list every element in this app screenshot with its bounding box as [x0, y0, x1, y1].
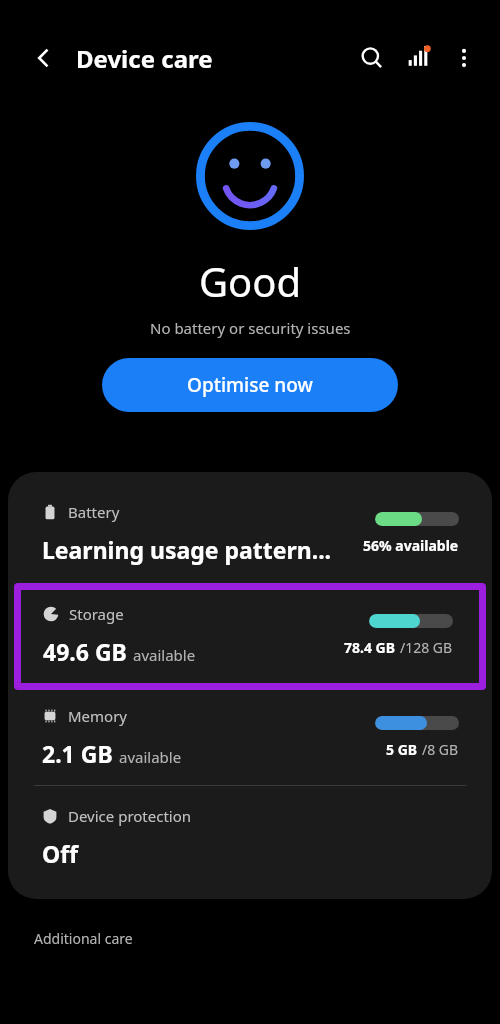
- staticText: /128 GB: [400, 638, 453, 657]
- staticText: 78.4 GB: [344, 638, 396, 657]
- staticText: Learning usage pattern...: [42, 534, 332, 565]
- staticText: Device care: [76, 42, 213, 75]
- staticText: Memory: [68, 706, 128, 726]
- button[interactable]: Usage statistics: [396, 36, 440, 80]
- button[interactable]: Device protection: [8, 786, 492, 891]
- staticText: Device protection: [68, 806, 192, 826]
- button[interactable]: More options: [442, 36, 486, 80]
- staticText: Battery: [68, 502, 120, 522]
- staticText: 2.1 GB: [42, 738, 113, 769]
- staticText: 5 GB: [386, 740, 418, 759]
- staticText: No battery or security issues: [150, 318, 351, 338]
- button[interactable]: Search: [350, 36, 394, 80]
- button[interactable]: Battery: [8, 488, 492, 581]
- staticText: available: [119, 747, 182, 767]
- staticText: Good: [199, 254, 302, 308]
- staticText: available: [133, 645, 196, 665]
- staticText: Additional care: [34, 929, 133, 948]
- button[interactable]: Memory: [8, 692, 492, 785]
- button[interactable]: Back: [22, 36, 66, 80]
- button[interactable]: Optimise now: [102, 358, 398, 412]
- staticText: 56% available: [363, 536, 459, 555]
- staticText: /8 GB: [422, 740, 459, 759]
- staticText: Optimise now: [187, 372, 313, 398]
- staticText: Off: [42, 838, 78, 869]
- staticText: Storage: [69, 604, 124, 624]
- staticText: 49.6 GB: [43, 636, 127, 667]
- button[interactable]: Storage: [21, 590, 479, 683]
